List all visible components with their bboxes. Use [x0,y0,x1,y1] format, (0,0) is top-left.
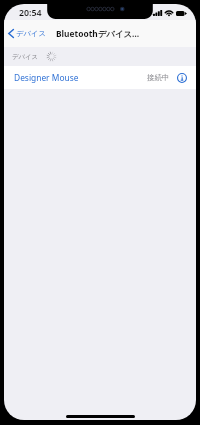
button[interactable]: 詳細情報 [177,73,187,83]
staticText: デバイス [16,29,46,38]
staticText: Bluetoothデバイス… [56,28,140,39]
staticText: Designer Mouse [14,72,79,83]
button[interactable]: デバイス [8,29,46,38]
staticText: 接続中 [147,73,170,82]
staticText: デバイス [12,53,39,61]
staticText: 20:54 [19,7,42,19]
button[interactable]: Designer Mouse [4,66,196,89]
